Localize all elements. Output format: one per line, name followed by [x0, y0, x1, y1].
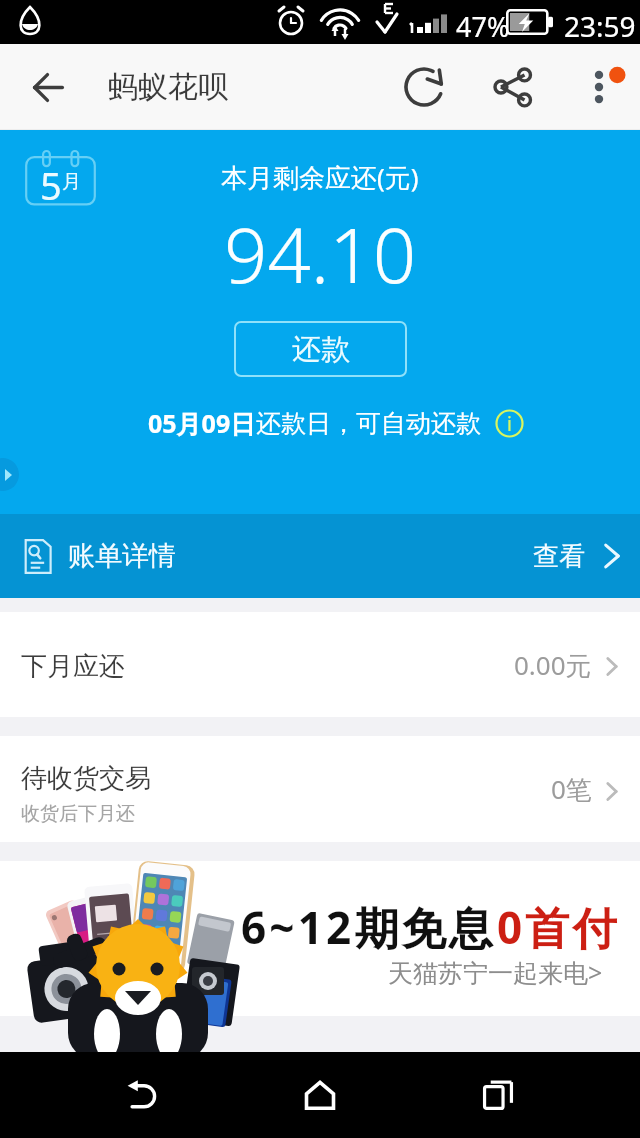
staticText: 账单详情: [68, 539, 176, 573]
button[interactable]: 下月应还: [0, 612, 640, 717]
staticText: 还款: [292, 331, 350, 368]
button[interactable]: Home: [231, 1052, 409, 1138]
staticText: 0笔: [551, 771, 592, 807]
button[interactable]: Share: [450, 44, 576, 130]
button[interactable]: Back: [0, 44, 96, 130]
staticText: 05月09日: [148, 406, 256, 440]
button[interactable]: 还款: [234, 321, 407, 377]
staticText: 下月应还: [21, 650, 125, 683]
staticText: 47%: [456, 8, 510, 45]
staticText: 6~12期免息: [241, 897, 497, 957]
staticText: 月: [62, 170, 81, 194]
button[interactable]: Info: [495, 409, 524, 438]
staticText: 94.10: [224, 202, 417, 306]
staticText: 23:59: [564, 7, 636, 45]
button[interactable]: Refresh: [398, 44, 450, 130]
staticText: 查看: [533, 540, 585, 573]
button[interactable]: 账单详情: [0, 514, 640, 598]
button[interactable]: Back: [53, 1052, 231, 1138]
button[interactable]: Expand: [0, 458, 19, 491]
button[interactable]: 待收货交易: [0, 736, 640, 842]
button[interactable]: More options: [576, 44, 640, 130]
staticText: 蚂蚁花呗: [108, 68, 228, 106]
button[interactable]: 6~12期免息: [0, 861, 640, 1016]
staticText: 还款日，可自动还款: [256, 408, 481, 439]
staticText: 5: [40, 159, 62, 211]
button[interactable]: Recent apps: [409, 1052, 587, 1138]
staticText: i: [507, 411, 512, 437]
staticText: 天猫苏宁一起来电>: [388, 955, 603, 989]
staticText: 收货后下月还: [21, 802, 135, 826]
staticText: 0首付: [497, 897, 620, 957]
staticText: 本月剩余应还(元): [221, 159, 419, 195]
staticText: 待收货交易: [21, 762, 151, 795]
staticText: 0.00元: [514, 647, 592, 683]
